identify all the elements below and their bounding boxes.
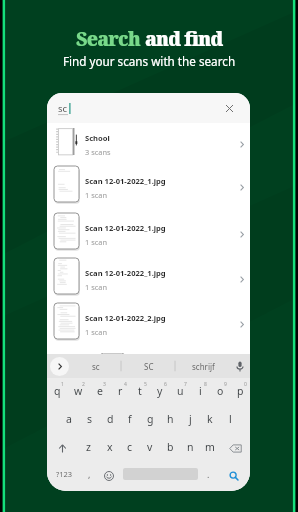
staticText: 9 — [224, 381, 227, 388]
staticText: t — [138, 384, 142, 398]
button[interactable]: c — [120, 434, 140, 462]
button[interactable]: Shift — [47, 434, 78, 462]
button[interactable]: More suggestions — [50, 357, 69, 376]
button[interactable]: SC — [122, 354, 176, 378]
button[interactable]: Open Scan 12-01-2022_1.jpg — [234, 212, 250, 257]
button[interactable]: Open Scan 12-01-2022_1.jpg — [234, 257, 250, 302]
staticText: s — [87, 412, 93, 426]
staticText: l — [229, 412, 232, 426]
button[interactable]: 5 — [130, 378, 150, 406]
staticText: b — [167, 440, 174, 454]
staticText: schrijf — [192, 361, 215, 372]
button[interactable]: z — [78, 434, 99, 462]
staticText: i — [199, 384, 202, 398]
staticText: w — [74, 384, 83, 398]
staticText: 1 scan — [85, 237, 107, 247]
button[interactable]: Emoji — [97, 462, 121, 490]
staticText: Search — [76, 26, 145, 52]
button[interactable]: n — [180, 434, 200, 462]
staticText: p — [237, 384, 244, 398]
staticText: k — [207, 412, 213, 426]
staticText: and find — [145, 26, 223, 52]
button[interactable]: Scan 12-01-2022_1.jpg — [47, 257, 250, 302]
staticText: v — [147, 440, 153, 454]
staticText: 4 — [124, 381, 127, 388]
button[interactable]: Backspace — [220, 434, 250, 462]
staticText: f — [128, 412, 132, 426]
button[interactable]: Voice input — [230, 354, 250, 378]
button[interactable]: 7 — [170, 378, 190, 406]
staticText: e — [97, 384, 103, 398]
staticText: sc — [58, 102, 68, 115]
staticText: h — [167, 412, 174, 426]
button[interactable]: 0 — [230, 378, 250, 406]
button[interactable]: g — [140, 406, 160, 434]
staticText: 6 — [164, 381, 167, 388]
staticText: j — [189, 412, 192, 426]
button[interactable]: 8 — [190, 378, 210, 406]
button[interactable]: Scan 12-01-2022_1.jpg — [47, 165, 250, 210]
staticText: m — [205, 440, 215, 454]
staticText: sc — [92, 361, 100, 372]
button[interactable]: 6 — [150, 378, 170, 406]
button[interactable]: x — [99, 434, 120, 462]
staticText: Scan 12-01-2022_1.jpg — [85, 223, 166, 233]
button[interactable]: a — [58, 406, 79, 434]
staticText: d — [107, 412, 114, 426]
button[interactable]: School — [47, 122, 250, 167]
button[interactable]: d — [100, 406, 120, 434]
button[interactable]: Open School — [234, 122, 250, 167]
staticText: Scan 12-01-2022_2.jpg — [85, 313, 166, 323]
button[interactable]: s — [79, 406, 100, 434]
staticText: ?123 — [56, 469, 73, 479]
staticText: 1 scan — [85, 190, 107, 200]
button[interactable]: schrijf — [176, 354, 230, 378]
button[interactable]: . — [200, 462, 217, 490]
button[interactable]: Search — [217, 462, 250, 490]
staticText: Find your scans with the search — [0, 53, 298, 69]
button[interactable]: Scan 12-01-2022_1.jpg — [47, 212, 250, 257]
button[interactable]: l — [220, 406, 240, 434]
button[interactable]: f — [120, 406, 140, 434]
staticText: x — [107, 440, 113, 454]
staticText: o — [217, 384, 224, 398]
button[interactable]: 2 — [68, 378, 89, 406]
button[interactable]: 3 — [89, 378, 110, 406]
staticText: 3 — [103, 381, 106, 388]
staticText: Scan 12-01-2022_1.jpg — [85, 268, 166, 278]
staticText: Scan 12-01-2022_1.jpg — [85, 176, 166, 186]
button[interactable]: Clear search — [222, 101, 236, 115]
staticText: 8 — [204, 381, 207, 388]
staticText: g — [147, 412, 154, 426]
button[interactable]: 4 — [110, 378, 130, 406]
staticText: n — [187, 440, 194, 454]
staticText: School — [85, 133, 110, 143]
button[interactable]: m — [200, 434, 220, 462]
staticText: 1 scan — [85, 327, 107, 337]
staticText: , — [88, 468, 91, 480]
staticText: 0 — [244, 381, 247, 388]
staticText: . — [207, 468, 210, 480]
staticText: 3 scans — [85, 147, 111, 157]
button[interactable]: , — [81, 462, 97, 490]
staticText: 1 scan — [85, 282, 107, 292]
button[interactable]: h — [160, 406, 180, 434]
staticText: u — [177, 384, 184, 398]
button[interactable]: Open Scan 12-01-2022_1.jpg — [234, 165, 250, 210]
button[interactable]: ?123 — [47, 462, 81, 490]
staticText: a — [66, 412, 72, 426]
button[interactable]: k — [200, 406, 220, 434]
button[interactable]: v — [140, 434, 160, 462]
staticText: SC — [144, 361, 154, 372]
button[interactable]: 1 — [47, 378, 68, 406]
button[interactable]: Scan 12-01-2022_2.jpg — [47, 302, 250, 347]
button[interactable]: 9 — [210, 378, 230, 406]
button[interactable]: j — [180, 406, 200, 434]
button[interactable]: Open Scan 12-01-2022_2.jpg — [234, 302, 250, 347]
staticText: 2 — [82, 381, 85, 388]
staticText: 5 — [144, 381, 147, 388]
button[interactable]: b — [160, 434, 180, 462]
button[interactable]: sc — [69, 354, 122, 378]
button[interactable]: sc — [47, 93, 250, 123]
